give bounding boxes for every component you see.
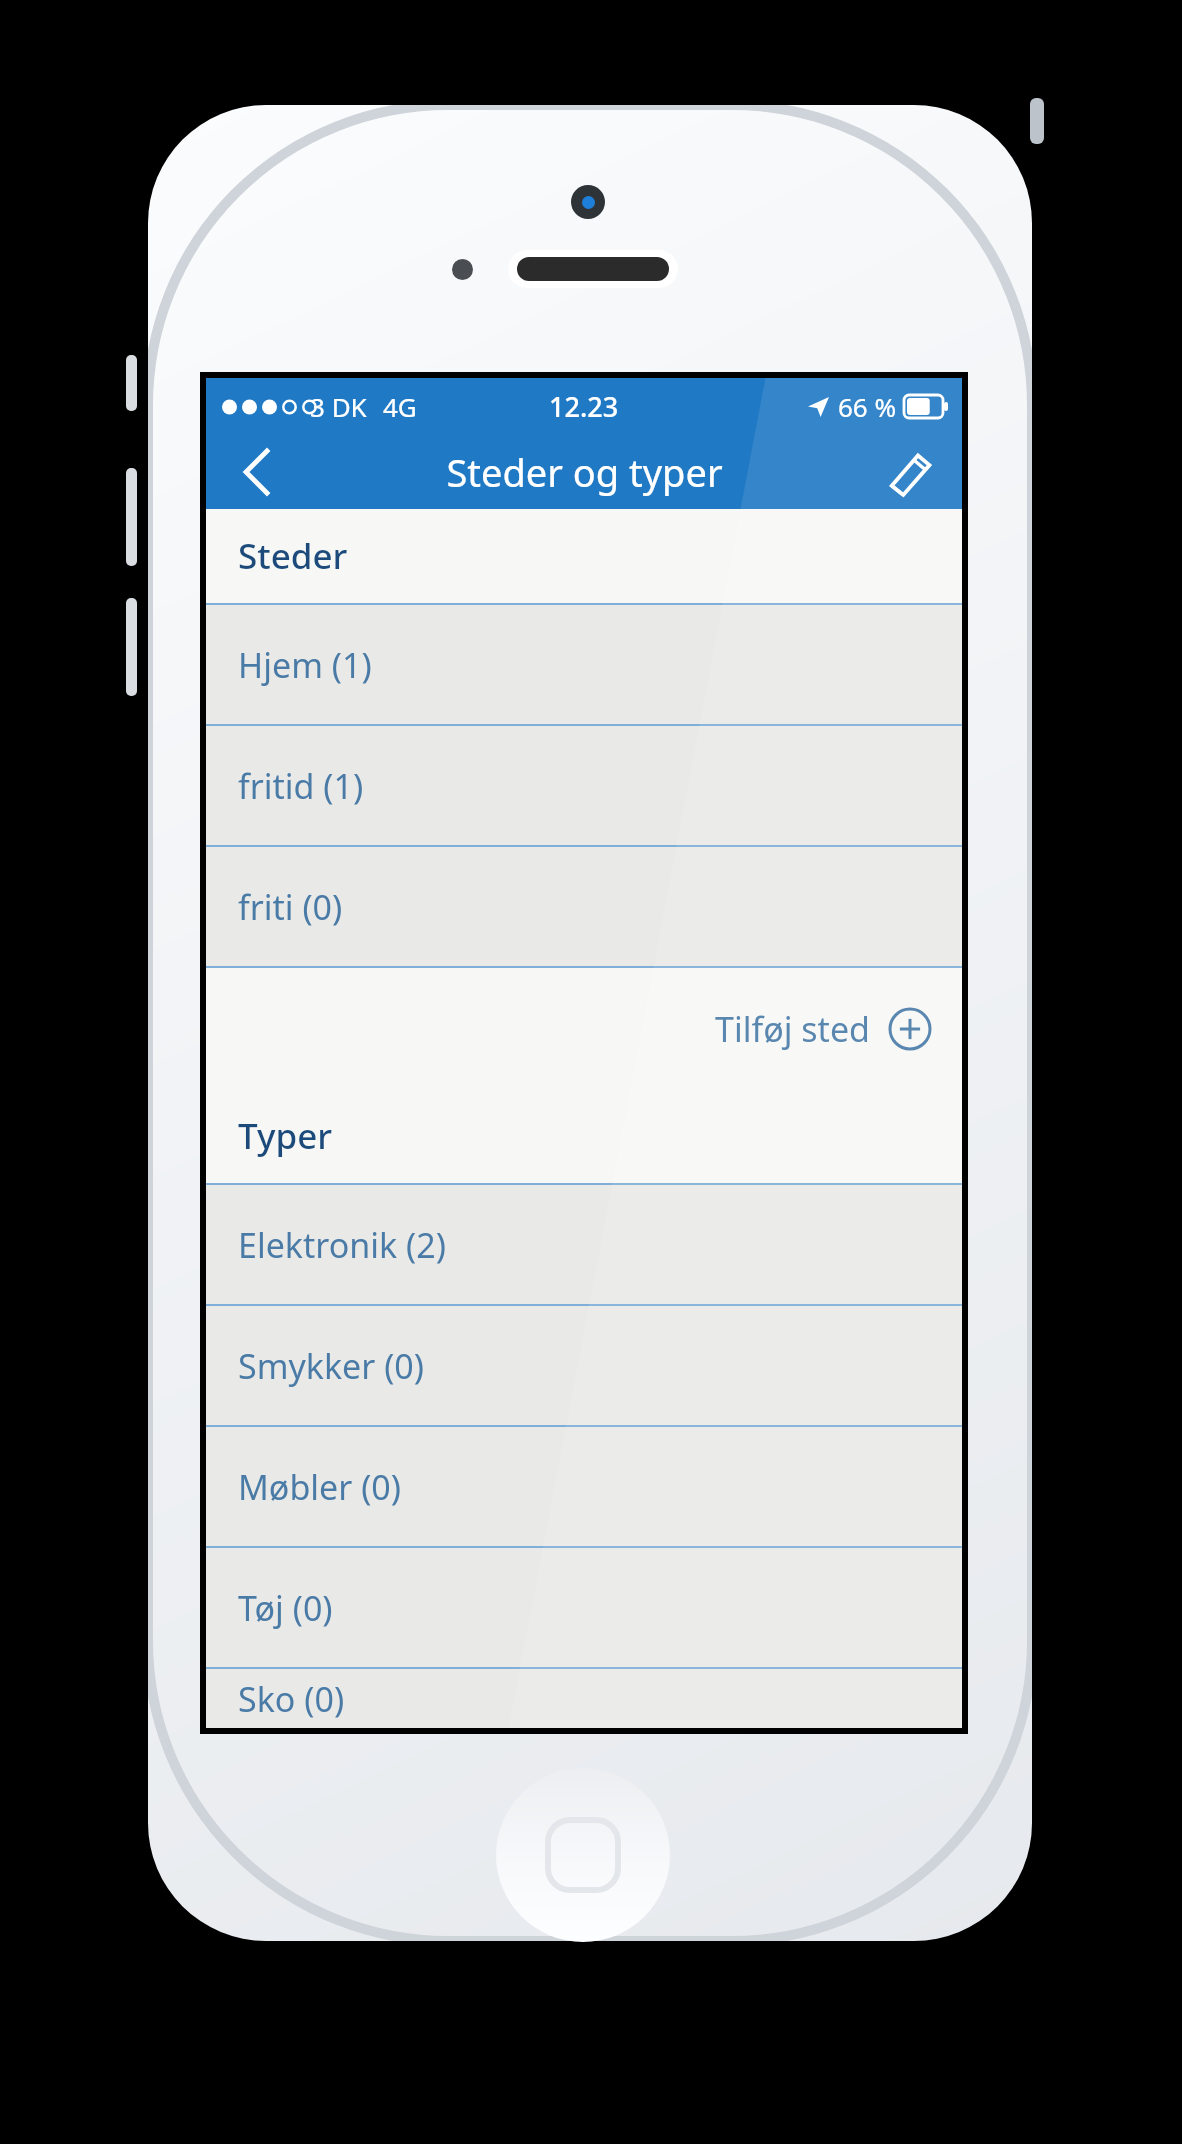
staticText: Tilføj sted xyxy=(715,1006,870,1052)
button[interactable]: Tøj (0) xyxy=(206,1548,962,1669)
staticText: 12.23 xyxy=(549,388,619,425)
button[interactable]: Tilføj sted xyxy=(206,968,962,1089)
button[interactable]: Møbler (0) xyxy=(206,1427,962,1548)
staticText: 66 % xyxy=(838,389,897,424)
staticText: Smykker (0) xyxy=(238,1343,425,1389)
staticText: friti (0) xyxy=(238,884,343,930)
staticText: Hjem (1) xyxy=(238,642,372,688)
staticText: Tøj (0) xyxy=(238,1585,333,1631)
staticText: Steder xyxy=(238,532,348,580)
staticText: 4G xyxy=(383,389,417,424)
button[interactable]: Smykker (0) xyxy=(206,1306,962,1427)
button[interactable]: Hjem (1) xyxy=(206,605,962,726)
staticText: Steder og typer xyxy=(446,446,723,498)
button[interactable]: friti (0) xyxy=(206,847,962,968)
staticText: Elektronik (2) xyxy=(238,1222,446,1268)
button[interactable]: Elektronik (2) xyxy=(206,1185,962,1306)
staticText: Typer xyxy=(238,1112,333,1160)
button[interactable]: Back xyxy=(206,435,306,509)
staticText: fritid (1) xyxy=(238,763,364,809)
button[interactable]: Edit xyxy=(862,435,962,509)
staticText: Møbler (0) xyxy=(238,1464,401,1510)
staticText: Sko (0) xyxy=(238,1676,345,1722)
staticText: 3 DK xyxy=(310,389,367,424)
button[interactable]: Sko (0) xyxy=(206,1669,962,1728)
button[interactable]: fritid (1) xyxy=(206,726,962,847)
